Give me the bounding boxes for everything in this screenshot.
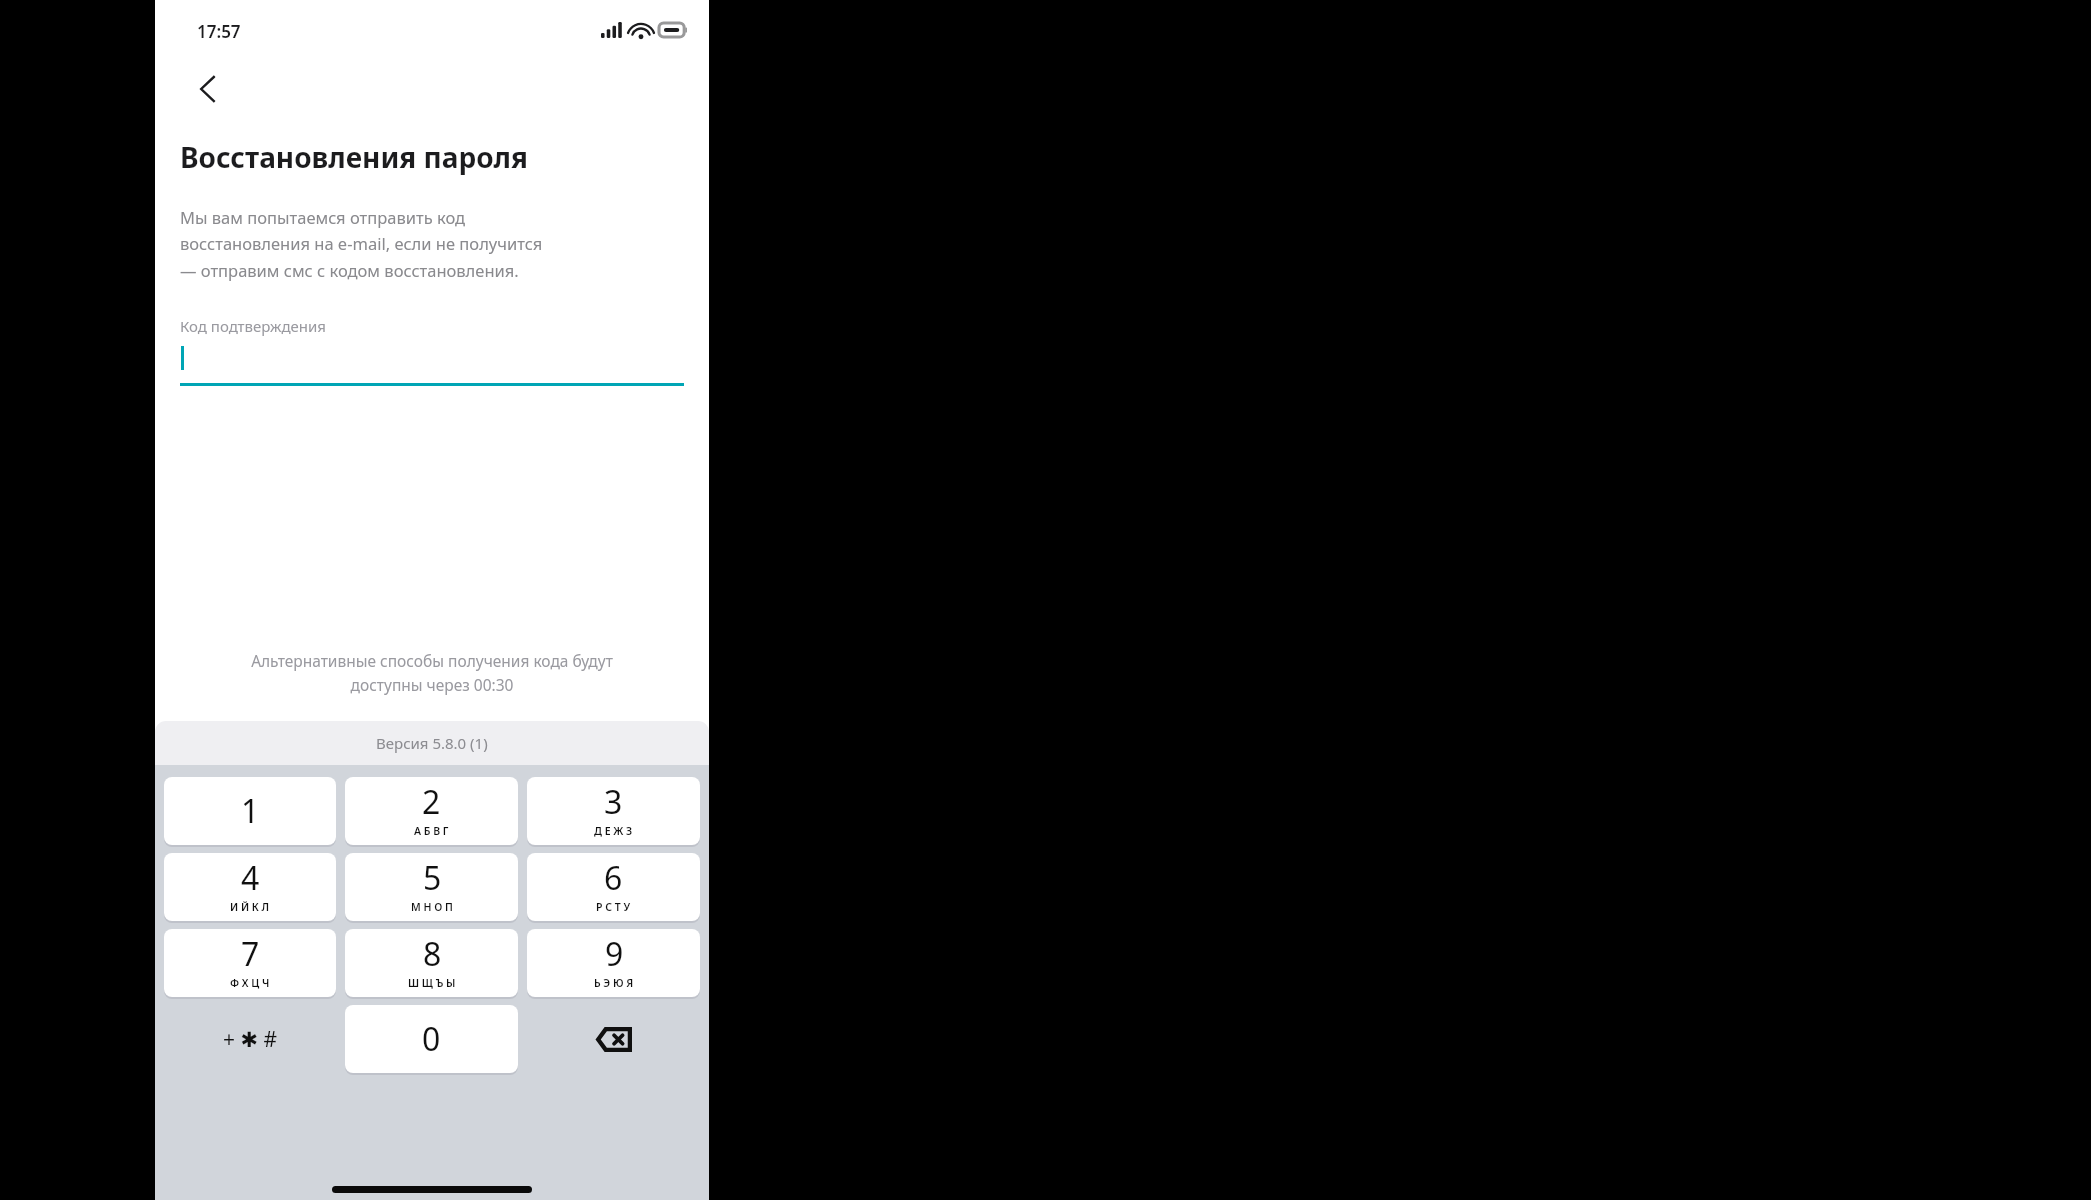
button[interactable]: 7 <box>164 929 336 997</box>
staticText: 4 <box>241 856 260 900</box>
staticText: 17:57 <box>197 20 241 43</box>
staticText: 7 <box>241 932 260 976</box>
staticText: 0 <box>422 1017 441 1061</box>
staticText: 6 <box>604 856 623 900</box>
button[interactable]: Back <box>181 63 233 115</box>
staticText: Д Е Ж З <box>594 824 633 838</box>
button[interactable]: Symbols <box>164 1005 336 1073</box>
staticText: Ф Х Ц Ч <box>230 976 270 990</box>
staticText: Мы вам попытаемся отправить код восстано… <box>180 206 543 282</box>
staticText: Код подтверждения <box>180 316 327 336</box>
staticText: Р С Т У <box>596 900 631 914</box>
staticText: 8 <box>423 932 442 976</box>
staticText: 5 <box>423 856 442 900</box>
button[interactable] <box>180 336 684 386</box>
button[interactable]: 5 <box>345 853 518 921</box>
button[interactable]: Backspace <box>527 1005 700 1073</box>
button[interactable]: 2 <box>345 777 518 845</box>
staticText: 9 <box>605 932 624 976</box>
button[interactable]: 3 <box>527 777 700 845</box>
button[interactable]: 8 <box>345 929 518 997</box>
button[interactable]: 4 <box>164 853 336 921</box>
staticText: 3 <box>604 780 623 824</box>
staticText: Версия 5.8.0 (1) <box>376 733 488 753</box>
staticText: Альтернативные способы получения кода бу… <box>173 650 691 695</box>
button[interactable]: 9 <box>527 929 700 997</box>
staticText: + ✱ # <box>223 1025 278 1054</box>
staticText: М Н О П <box>411 900 453 914</box>
button[interactable]: 0 <box>345 1005 518 1073</box>
button[interactable]: 6 <box>527 853 700 921</box>
button[interactable]: 1 <box>164 777 336 845</box>
staticText: Ш Щ Ъ Ы <box>408 976 456 990</box>
staticText: 2 <box>422 780 441 824</box>
staticText: А Б В Г <box>414 824 449 838</box>
staticText: И Й К Л <box>230 900 270 914</box>
staticText: Восстановления пароля <box>180 138 528 176</box>
staticText: 1 <box>241 789 260 833</box>
staticText: Ь Э Ю Я <box>594 976 634 990</box>
